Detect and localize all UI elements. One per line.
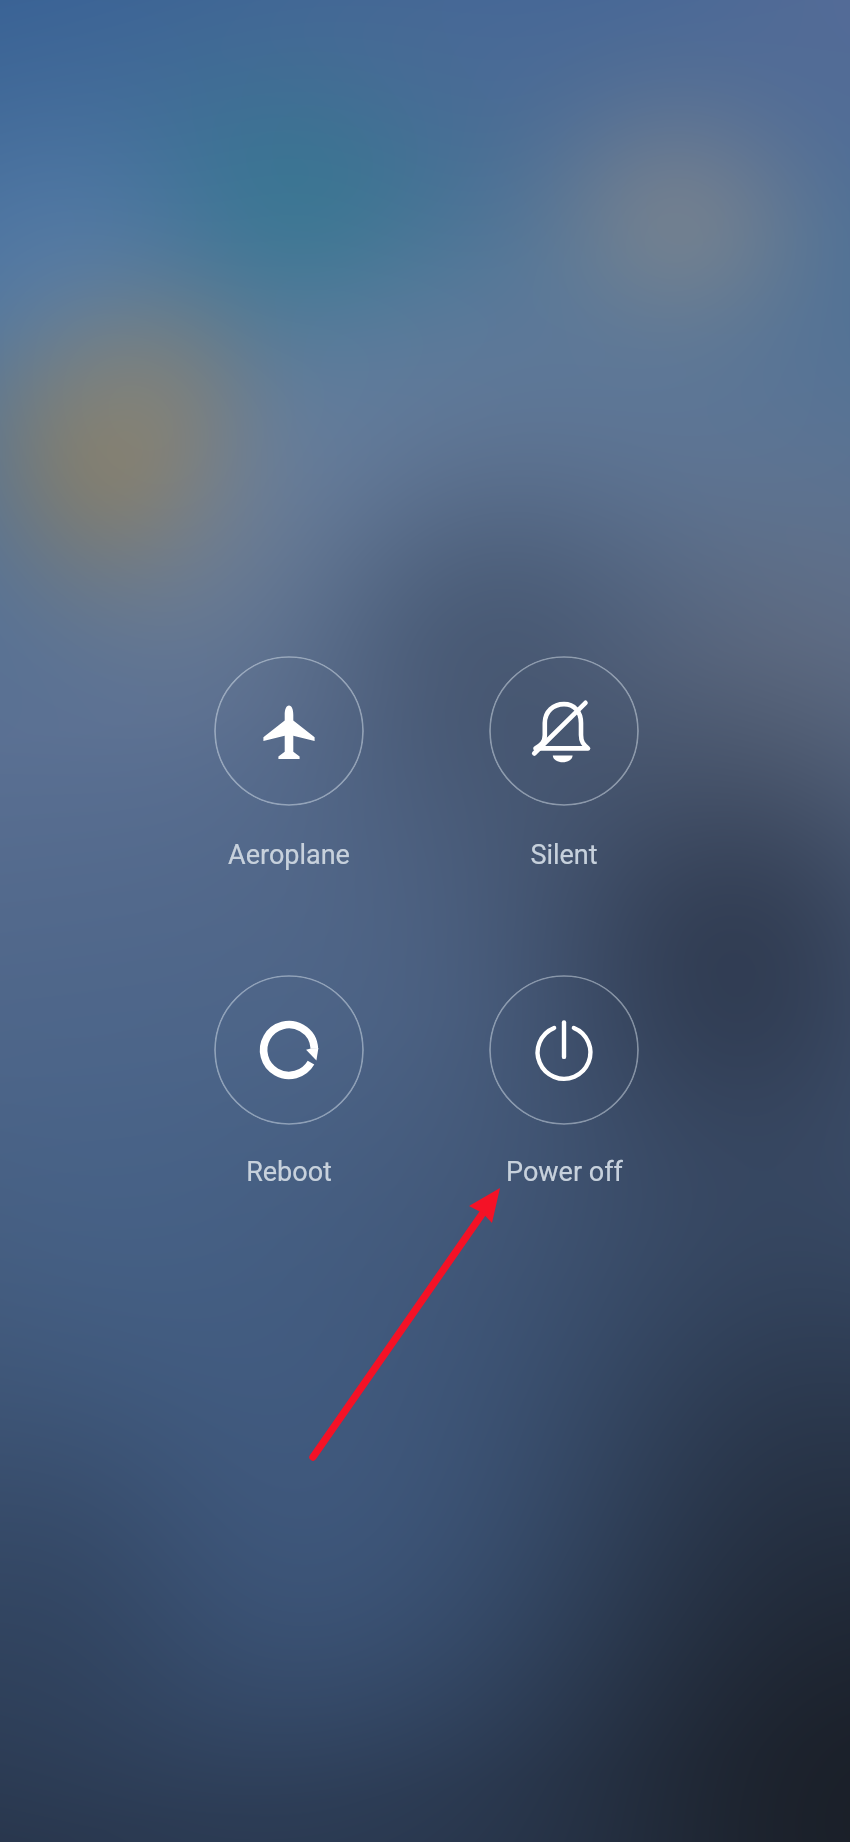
staticText: Power off bbox=[506, 1156, 623, 1188]
button[interactable]: Reboot bbox=[139, 1156, 439, 1198]
staticText: Reboot bbox=[246, 1156, 332, 1188]
button[interactable]: Aeroplane bbox=[214, 656, 364, 806]
button[interactable]: Silent bbox=[489, 656, 639, 806]
button[interactable]: Aeroplane bbox=[139, 839, 439, 881]
button[interactable]: Power off bbox=[414, 1156, 714, 1198]
staticText: Silent bbox=[530, 839, 598, 871]
button[interactable]: Reboot bbox=[214, 975, 364, 1125]
button[interactable]: Silent bbox=[414, 839, 714, 881]
staticText: Aeroplane bbox=[228, 839, 350, 871]
button[interactable]: Power off bbox=[489, 975, 639, 1125]
